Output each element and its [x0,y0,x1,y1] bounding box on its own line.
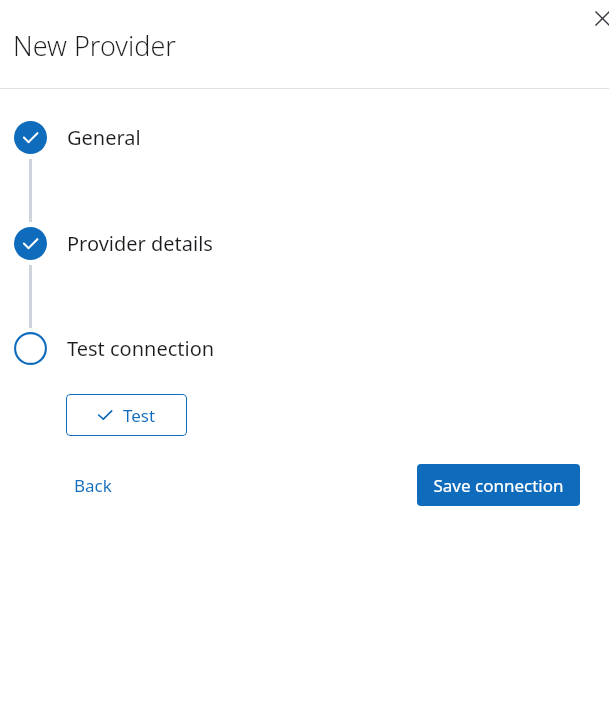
staticText: Back [74,474,112,497]
button[interactable]: Back [66,464,120,506]
staticText: Save connection [433,474,564,497]
staticText: Test [123,404,156,427]
staticText: New Provider [13,27,176,64]
button[interactable]: Close [584,0,609,36]
staticText: General [67,124,141,151]
staticText: Provider details [67,230,213,257]
button[interactable]: Test connection [14,332,215,365]
button[interactable]: Test [66,394,187,436]
button[interactable]: General [14,121,141,154]
staticText: Test connection [67,335,215,362]
button[interactable]: Provider details [14,227,213,260]
button[interactable]: Save connection [417,464,580,506]
